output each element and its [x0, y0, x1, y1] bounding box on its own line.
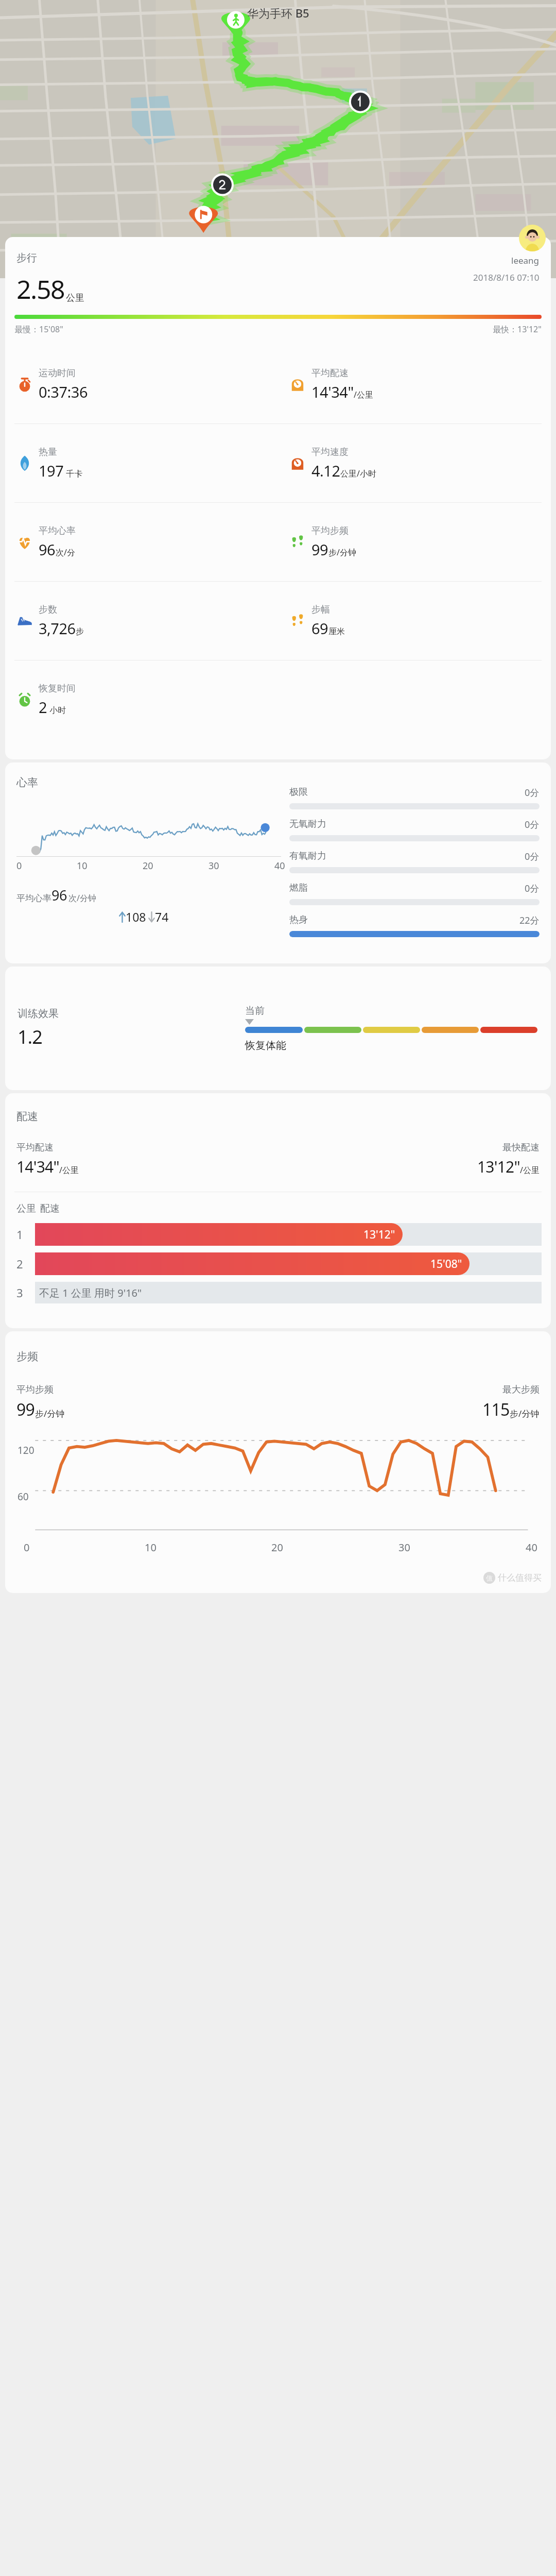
staticText: 华为手环 B5	[247, 5, 309, 21]
button[interactable]: 恢复时间	[5, 660, 278, 739]
staticText: 不足 1 公里 用时 9'16"	[39, 1286, 142, 1300]
button[interactable]: 平均步频	[278, 503, 551, 581]
button[interactable]: 步频	[5, 1331, 551, 1593]
staticText: 燃脂	[289, 882, 308, 894]
staticText: 69	[311, 618, 328, 638]
staticText: 步/分钟	[35, 1408, 65, 1419]
staticText: 3	[16, 1285, 23, 1300]
staticText: 10	[145, 1540, 157, 1554]
staticText: 最快配速	[502, 1142, 540, 1154]
staticText: 1.2	[18, 1024, 42, 1049]
staticText: 2.58	[16, 272, 65, 307]
staticText: 60	[18, 1490, 29, 1503]
button[interactable]: 平均配速	[278, 345, 551, 423]
staticText: 0分	[525, 850, 540, 863]
staticText: 当前	[245, 1005, 265, 1017]
button[interactable]: 热量	[5, 424, 278, 502]
staticText: 步/分钟	[510, 1408, 540, 1419]
button[interactable]: 步幅	[278, 582, 551, 660]
staticText: 4.12	[311, 461, 340, 481]
staticText: 步/分钟	[328, 547, 356, 558]
staticText: 99	[311, 539, 328, 560]
staticText: 0分	[525, 882, 540, 895]
staticText: 120	[18, 1444, 34, 1457]
staticText: 步	[76, 626, 84, 637]
button[interactable]: 训练效果	[5, 967, 551, 1090]
staticText: 108	[126, 909, 146, 925]
staticText: 有氧耐力	[289, 850, 326, 862]
staticText: 步数	[39, 604, 57, 616]
staticText: 1	[16, 1227, 23, 1242]
button[interactable]: Route map	[0, 0, 556, 278]
staticText: 22分	[519, 914, 540, 927]
staticText: 极限	[289, 786, 308, 798]
staticText: 20	[271, 1540, 283, 1554]
staticText: 热量	[39, 446, 57, 458]
staticText: 20	[143, 859, 153, 872]
staticText: /公里	[520, 1164, 540, 1176]
staticText: 最大步频	[502, 1384, 540, 1396]
staticText: 0	[16, 859, 22, 872]
staticText: 10	[77, 859, 88, 872]
staticText: 心率	[16, 776, 38, 789]
staticText: 30	[398, 1540, 410, 1554]
staticText: /公里	[59, 1164, 79, 1176]
staticText: 配速	[40, 1202, 60, 1215]
staticText: 3,726	[39, 618, 76, 638]
staticText: 115	[482, 1398, 510, 1421]
staticText: 2	[39, 697, 47, 717]
staticText: 平均步频	[311, 525, 349, 537]
staticText: 公里	[66, 292, 84, 304]
staticText: 平均心率	[39, 525, 76, 537]
staticText: 最快：13'12"	[493, 324, 542, 335]
staticText: 30	[208, 859, 219, 872]
staticText: 训练效果	[18, 1007, 59, 1020]
button[interactable]: 运动时间	[5, 345, 278, 423]
staticText: 2	[16, 1256, 23, 1272]
staticText: 值	[486, 1574, 493, 1582]
staticText: leeang	[511, 255, 540, 266]
staticText: 0分	[525, 818, 540, 831]
staticText: 公里	[16, 1202, 36, 1215]
button[interactable]: Profile photo	[519, 225, 546, 251]
button[interactable]: 配速	[5, 1093, 551, 1328]
staticText: 平均配速	[16, 1142, 54, 1154]
button[interactable]: 步数	[5, 582, 278, 660]
staticText: 步行	[16, 251, 37, 264]
staticText: 次/分	[56, 547, 75, 558]
staticText: /公里	[354, 389, 373, 400]
staticText: 千卡	[64, 468, 83, 479]
button[interactable]: 平均速度	[278, 424, 551, 502]
staticText: 步幅	[311, 604, 330, 616]
staticText: 0	[24, 1540, 30, 1554]
staticText: 公里/小时	[340, 468, 376, 479]
staticText: 99	[16, 1398, 35, 1421]
staticText: 2018/8/16 07:10	[473, 272, 540, 283]
staticText: 96	[51, 886, 67, 905]
staticText: 14'34"	[311, 382, 354, 402]
staticText: 小时	[47, 704, 66, 716]
staticText: 最慢：15'08"	[14, 324, 63, 335]
staticText: 次/分钟	[68, 892, 96, 904]
staticText: 运动时间	[39, 367, 76, 379]
staticText: 步频	[16, 1350, 38, 1363]
button[interactable]: 心率	[5, 762, 551, 963]
staticText: 0分	[525, 786, 540, 799]
staticText: 厘米	[328, 626, 345, 637]
staticText: 13'12"	[363, 1227, 395, 1242]
staticText: 197	[39, 461, 64, 481]
staticText: 无氧耐力	[289, 818, 326, 830]
staticText: 恢复时间	[39, 683, 76, 694]
staticText: 热身	[289, 914, 308, 926]
staticText: 40	[274, 859, 285, 872]
staticText: 平均速度	[311, 446, 349, 458]
staticText: 96	[39, 539, 56, 560]
staticText: 恢复体能	[245, 1039, 286, 1052]
button[interactable]: 平均心率	[5, 503, 278, 581]
staticText: 14'34"	[16, 1156, 59, 1177]
staticText: 什么值得买	[498, 1572, 542, 1583]
staticText: 74	[155, 909, 169, 925]
staticText: 平均心率	[16, 893, 51, 904]
staticText: 平均配速	[311, 367, 349, 379]
staticText: 15'08"	[430, 1257, 462, 1272]
